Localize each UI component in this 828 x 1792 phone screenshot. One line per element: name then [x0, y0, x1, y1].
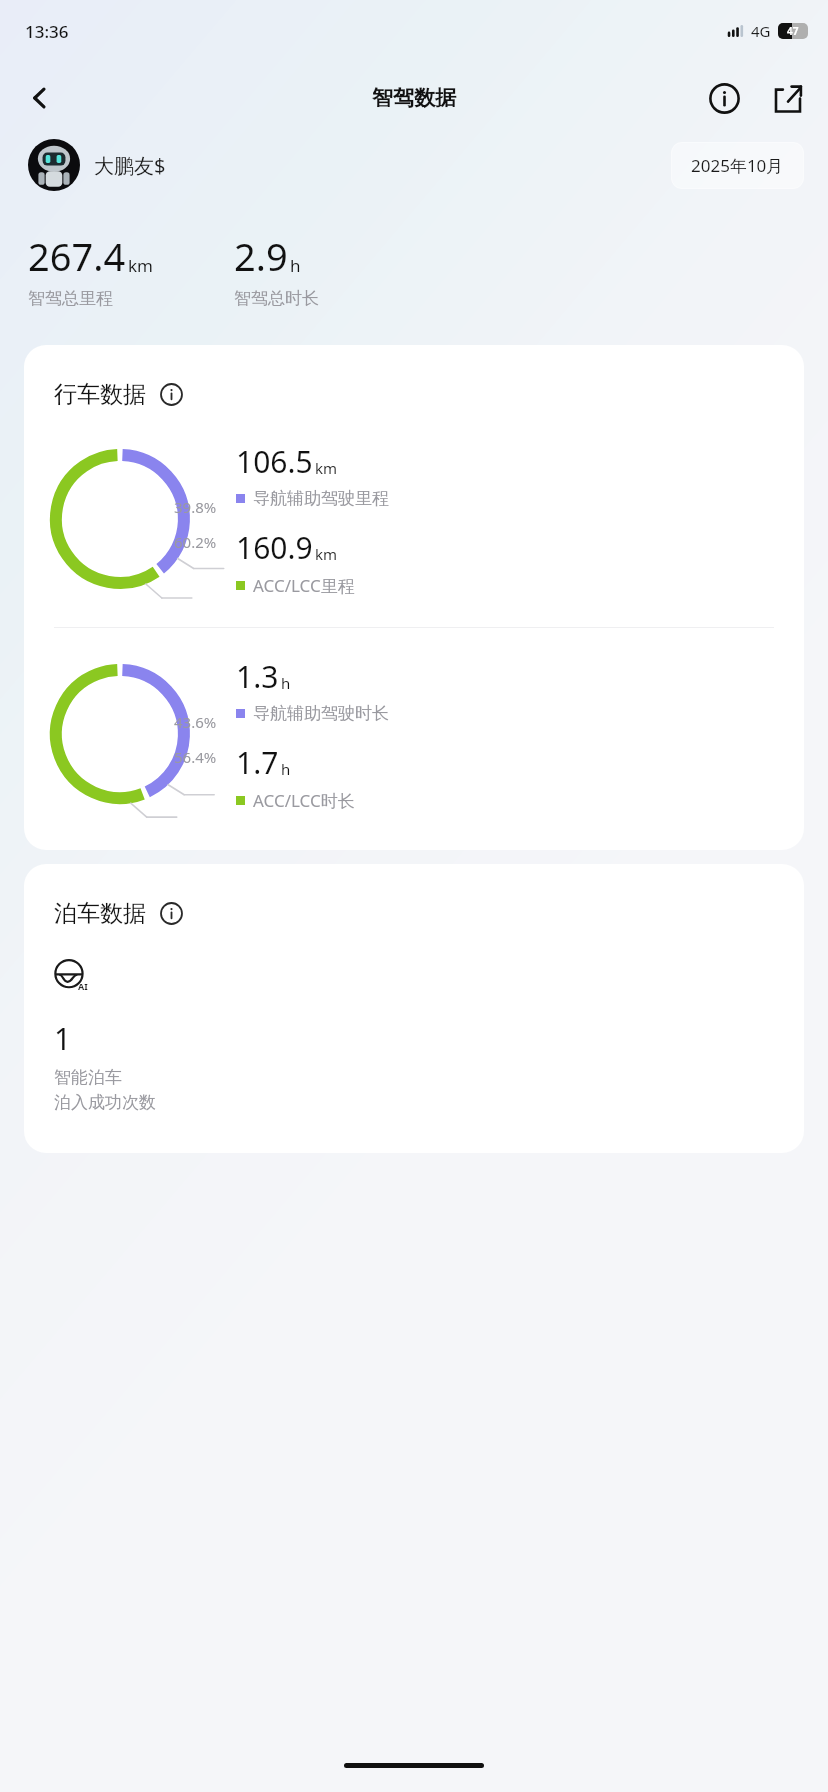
- staticText: 导航辅助驾驶里程: [253, 488, 389, 509]
- staticText: 13:36: [25, 20, 69, 43]
- staticText: km: [128, 254, 153, 277]
- staticText: 智能泊车: [54, 1067, 122, 1088]
- button[interactable]: 行车数据: [24, 345, 804, 850]
- staticText: km: [315, 544, 338, 564]
- staticText: 泊入成功次数: [54, 1092, 156, 1113]
- staticText: km: [315, 458, 338, 478]
- button[interactable]: Avatar: [28, 139, 80, 191]
- staticText: 智驾数据: [372, 85, 456, 111]
- staticText: 56.4%: [174, 747, 217, 767]
- staticText: 43.6%: [174, 712, 217, 732]
- staticText: 大鹏友$: [94, 152, 166, 179]
- staticText: h: [281, 759, 291, 779]
- staticText: 智驾总里程: [28, 288, 113, 309]
- staticText: 智驾总时长: [234, 288, 319, 309]
- button[interactable]: 泊车数据: [24, 864, 804, 1153]
- staticText: h: [290, 254, 301, 277]
- button[interactable]: 2025年10月: [671, 142, 804, 189]
- staticText: 泊车数据: [54, 899, 146, 928]
- button[interactable]: Info: [698, 72, 750, 124]
- staticText: ACC/LCC时长: [253, 789, 355, 812]
- staticText: 60.2%: [174, 532, 217, 552]
- staticText: 2025年10月: [691, 154, 784, 177]
- button[interactable]: Share: [762, 72, 814, 124]
- staticText: h: [281, 673, 291, 693]
- button[interactable]: Info about 泊车数据: [156, 898, 186, 928]
- staticText: AI: [78, 980, 88, 992]
- staticText: 4G: [751, 21, 771, 41]
- staticText: 1.7: [236, 742, 279, 783]
- staticText: 160.9: [236, 527, 313, 568]
- staticText: 导航辅助驾驶时长: [253, 703, 389, 724]
- staticText: 2.9: [234, 230, 288, 282]
- staticText: 47: [787, 24, 799, 38]
- staticText: 1: [54, 1018, 72, 1059]
- button[interactable]: Back: [14, 72, 66, 124]
- button[interactable]: Info about 行车数据: [156, 379, 186, 409]
- staticText: 39.8%: [174, 497, 217, 517]
- staticText: 1.3: [236, 656, 279, 697]
- staticText: 106.5: [236, 441, 313, 482]
- staticText: ACC/LCC里程: [253, 574, 355, 597]
- staticText: 267.4: [28, 230, 126, 282]
- staticText: 行车数据: [54, 380, 146, 409]
